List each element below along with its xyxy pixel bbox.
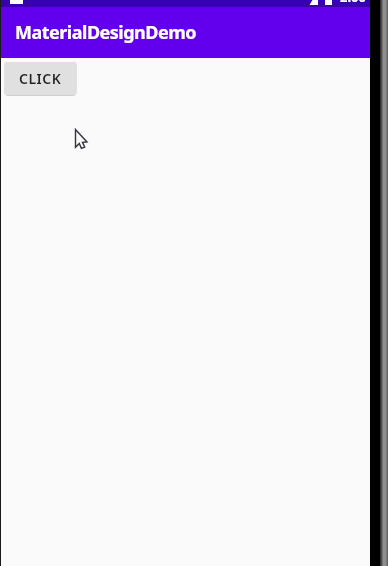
staticText: 2:00 [340,0,366,2]
staticText: MaterialDesignDemo [15,20,197,45]
button[interactable]: CLICK [4,62,77,95]
staticText: CLICK [19,69,62,88]
